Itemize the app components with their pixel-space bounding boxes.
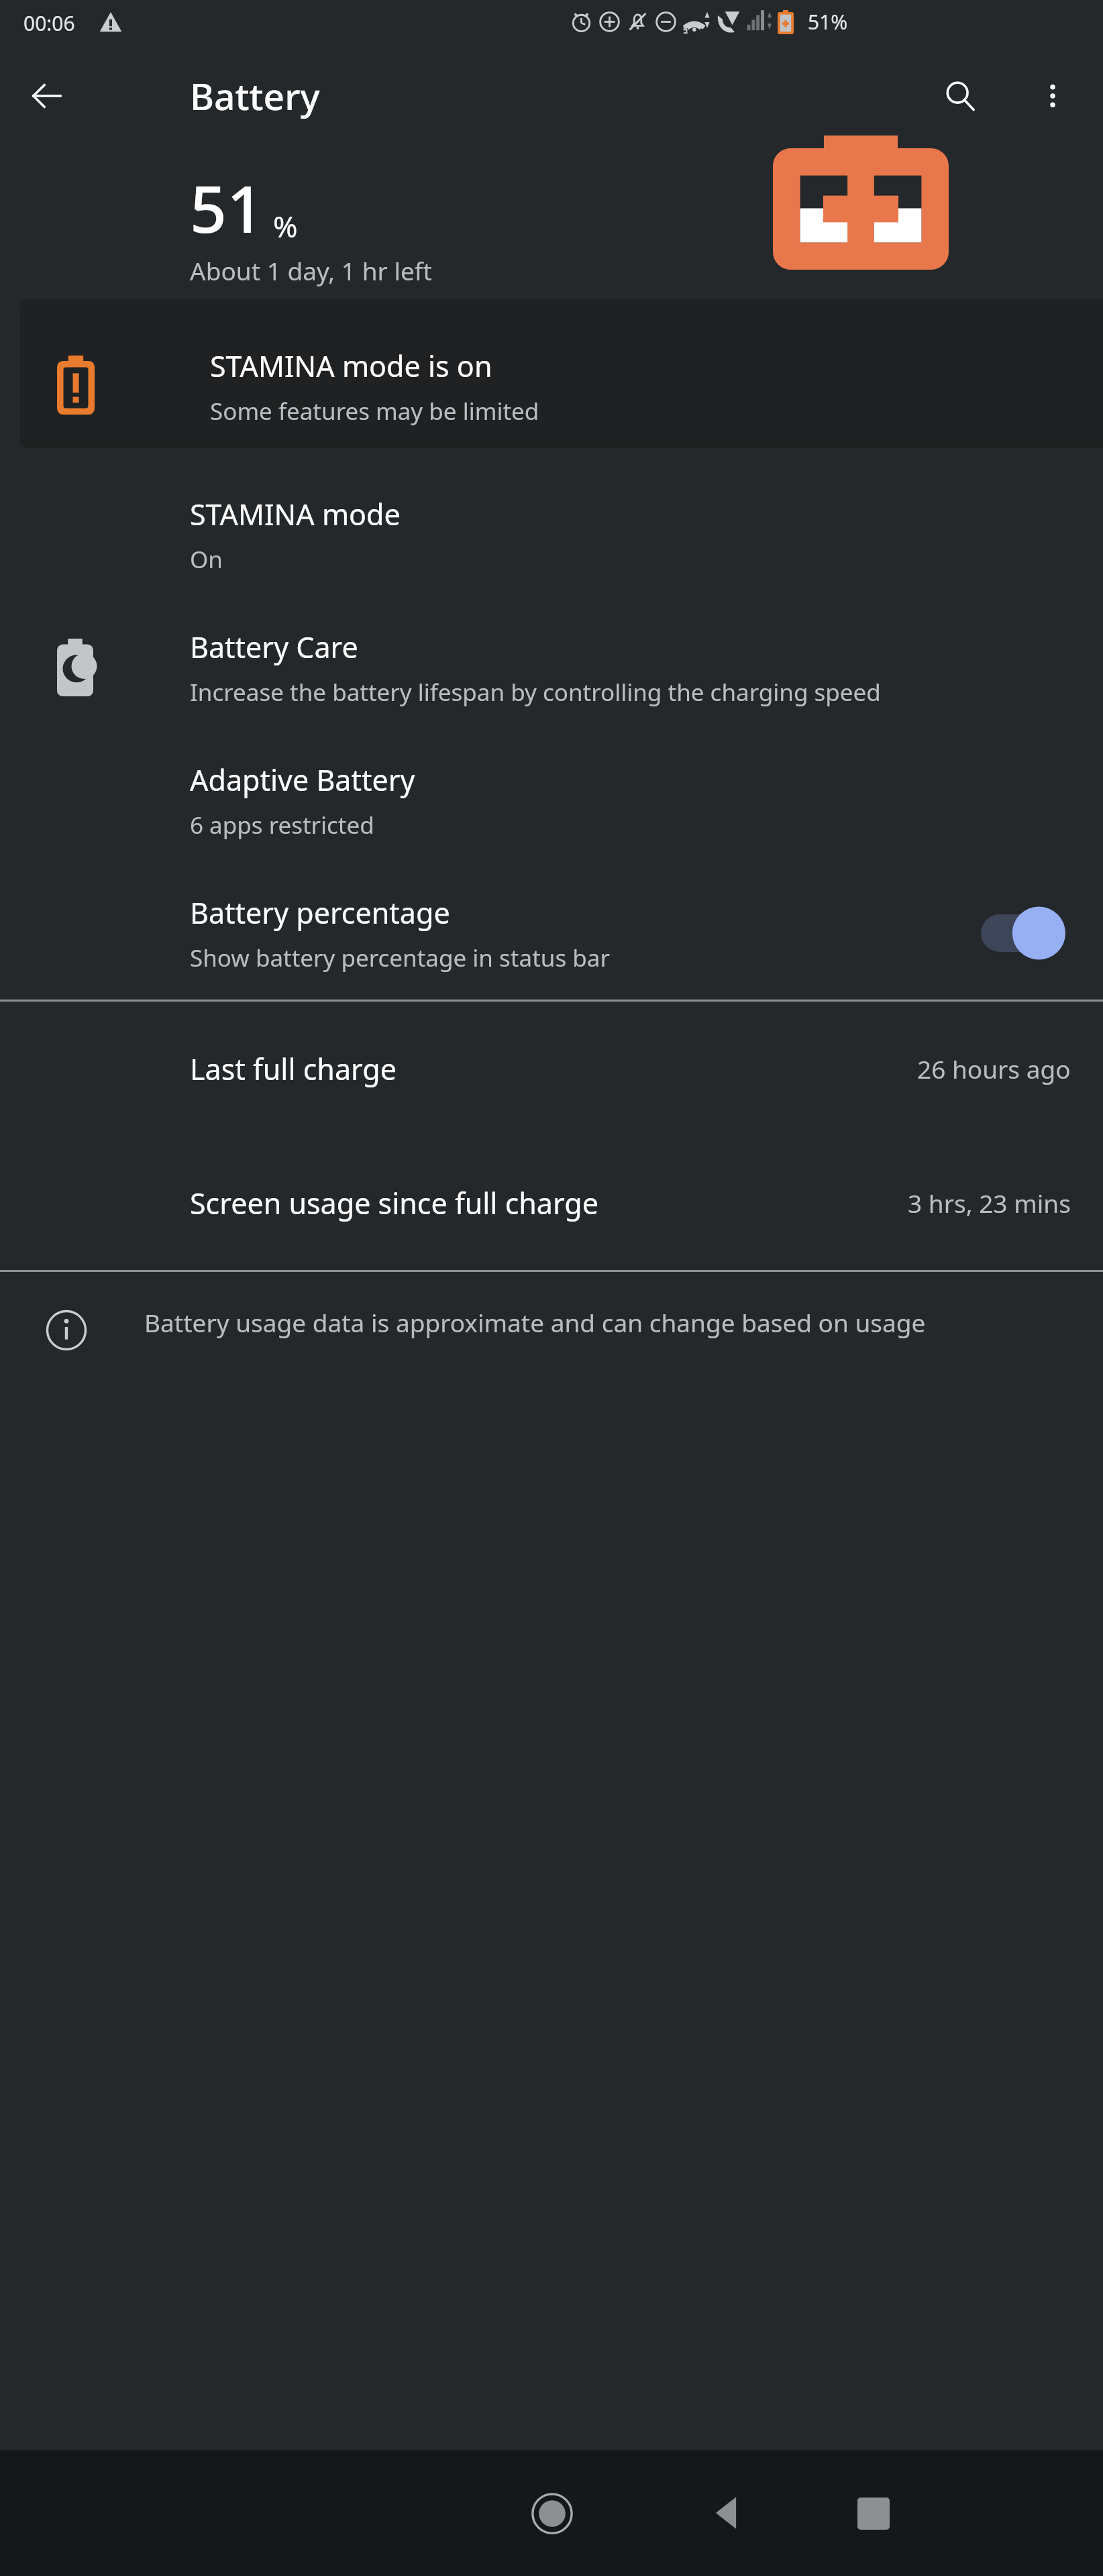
staticText: 3 hrs, 23 mins	[908, 1186, 1071, 1220]
staticText: Adaptive Battery	[190, 760, 415, 800]
staticText: Battery usage data is approximate and ca…	[144, 1305, 1016, 1339]
button[interactable]: Search	[928, 64, 992, 128]
button[interactable]: Back	[19, 68, 75, 124]
staticText: Battery Care	[190, 627, 358, 667]
button[interactable]: Adaptive Battery	[0, 734, 1103, 867]
staticText: 26 hours ago	[917, 1052, 1071, 1085]
button[interactable]: Battery Care	[0, 601, 1103, 734]
staticText: 51%	[808, 8, 848, 36]
button[interactable]: STAMINA mode	[0, 468, 1103, 601]
button[interactable]: Battery percentage	[0, 867, 1103, 1000]
staticText: Last full charge	[190, 1049, 397, 1089]
staticText: 6 apps restricted	[190, 809, 374, 841]
button[interactable]: Home	[493, 2455, 611, 2572]
staticText: On	[190, 543, 223, 576]
button[interactable]: More options	[1022, 66, 1083, 126]
staticText: 51	[190, 164, 264, 252]
staticText: Some features may be limited	[210, 395, 539, 427]
staticText: Show battery percentage in status bar	[190, 942, 610, 974]
staticText: Increase the battery lifespan by control…	[190, 676, 881, 708]
staticText: About 1 day, 1 hr left	[190, 254, 432, 287]
staticText: 00:06	[23, 9, 75, 37]
staticText: Battery	[190, 70, 320, 121]
button[interactable]: Screen usage since full charge	[0, 1136, 1103, 1270]
button[interactable]: Last full charge	[0, 1002, 1103, 1136]
staticText: %	[273, 206, 298, 246]
staticText: Battery percentage	[190, 893, 450, 932]
button[interactable]: STAMINA mode is on	[20, 299, 1103, 448]
button[interactable]: Back	[174, 2450, 1103, 2576]
staticText: STAMINA mode is on	[210, 346, 492, 386]
button[interactable]: Recent apps	[815, 2455, 932, 2572]
staticText: STAMINA mode	[190, 494, 401, 534]
staticText: Screen usage since full charge	[190, 1183, 599, 1223]
